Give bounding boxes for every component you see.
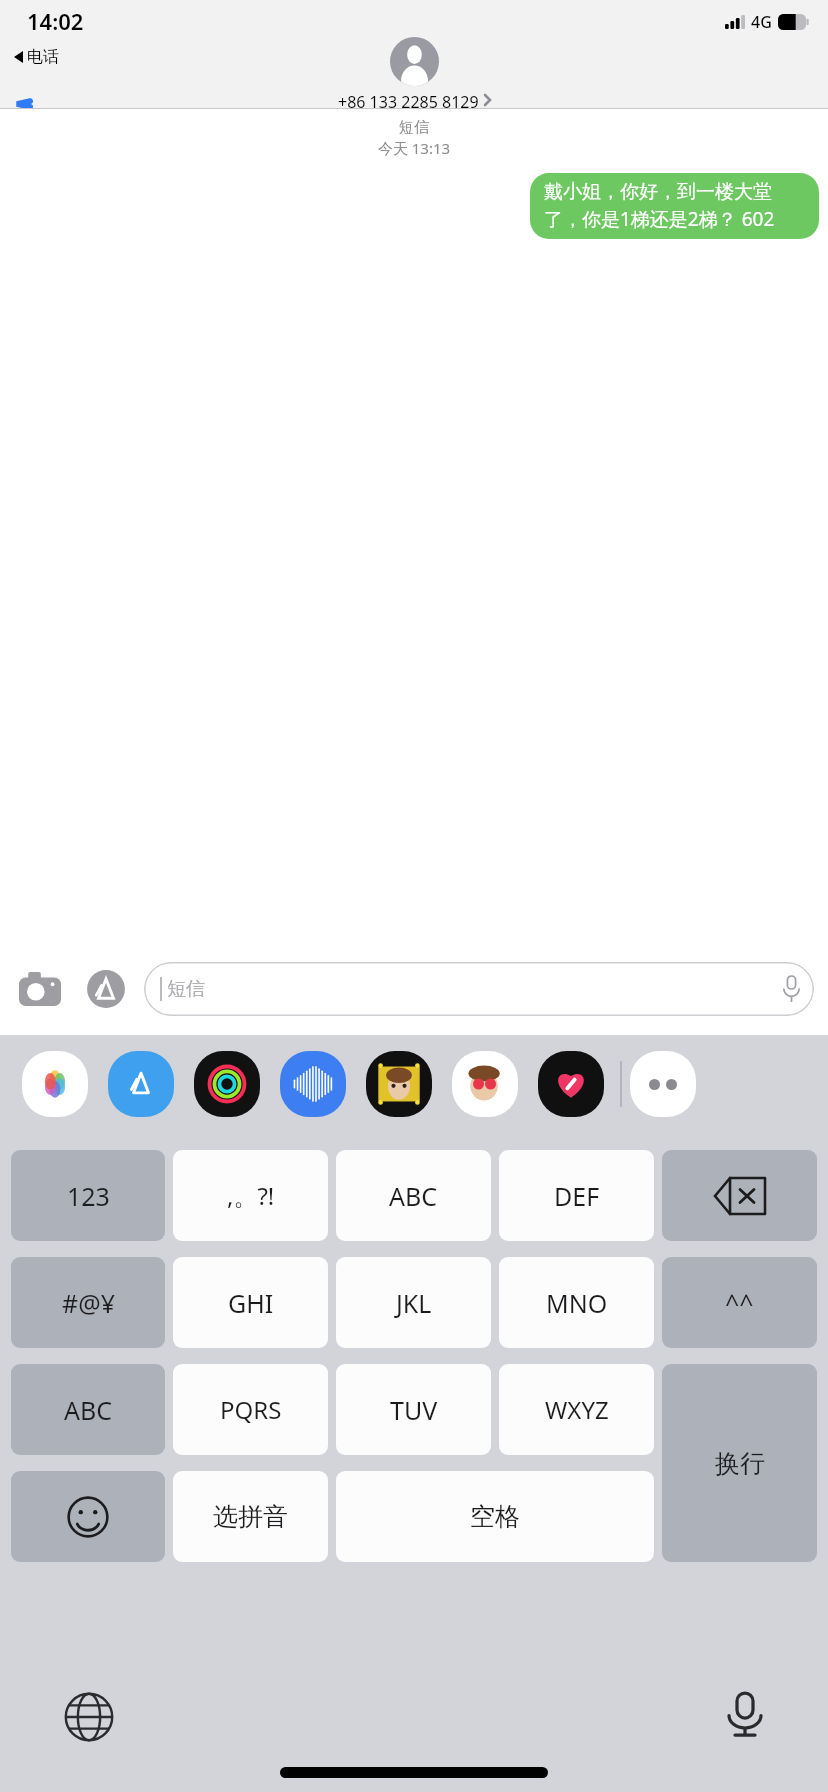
staticText: 空格 xyxy=(470,1501,520,1532)
button[interactable]: App 6 xyxy=(538,1051,604,1117)
staticText: GHI xyxy=(228,1286,274,1320)
button[interactable]: TUV xyxy=(336,1364,491,1455)
button[interactable]: App 0 xyxy=(22,1051,88,1117)
staticText: MNO xyxy=(546,1286,608,1320)
button[interactable]: App 4 xyxy=(366,1051,432,1117)
staticText: PQRS xyxy=(220,1393,282,1426)
staticText: DEF xyxy=(554,1179,600,1213)
button[interactable]: GHI xyxy=(173,1257,328,1348)
button[interactable]: 戴小姐，你好，到一楼大堂了，你是1梯还是2梯？ 602 xyxy=(530,173,819,239)
button[interactable]: #@¥ xyxy=(11,1257,165,1348)
button[interactable]: PQRS xyxy=(173,1364,328,1455)
staticText: 123 xyxy=(67,1179,110,1213)
button[interactable]: Dictation xyxy=(720,1688,770,1738)
staticText: #@¥ xyxy=(62,1286,115,1320)
staticText: 14:02 xyxy=(27,6,84,36)
staticText: +86 133 2285 8129 xyxy=(338,91,479,109)
button[interactable]: App 1 xyxy=(108,1051,174,1117)
button[interactable]: App Store xyxy=(80,963,132,1015)
staticText: TUV xyxy=(390,1393,438,1427)
staticText: 4G xyxy=(751,11,772,33)
button[interactable]: DEF xyxy=(499,1150,654,1241)
button[interactable]: ^^ xyxy=(662,1257,817,1348)
staticText: ^^ xyxy=(725,1286,754,1320)
button[interactable]: 123 xyxy=(11,1150,165,1241)
staticText: 短信 xyxy=(0,118,828,137)
staticText: ,。?! xyxy=(227,1179,275,1212)
staticText: 短信 xyxy=(167,977,205,1001)
button[interactable]: ABC xyxy=(336,1150,491,1241)
button[interactable]: App 5 xyxy=(452,1051,518,1117)
button[interactable]: WXYZ xyxy=(499,1364,654,1455)
staticText: 今天 13:13 xyxy=(0,138,828,158)
button[interactable]: App 3 xyxy=(280,1051,346,1117)
button[interactable]: +86 133 2285 8129 xyxy=(338,37,491,109)
staticText: 电话 xyxy=(27,47,59,67)
button[interactable]: Emoji xyxy=(11,1471,165,1562)
staticText: ABC xyxy=(64,1393,113,1427)
staticText: 选拼音 xyxy=(213,1501,288,1532)
staticText: WXYZ xyxy=(545,1393,609,1426)
button[interactable]: 换行 xyxy=(662,1364,817,1562)
button[interactable]: ,。?! xyxy=(173,1150,328,1241)
button[interactable]: ABC xyxy=(11,1364,165,1455)
button[interactable]: Back, 19 unread xyxy=(8,98,84,109)
button[interactable]: More xyxy=(630,1051,696,1117)
button[interactable]: JKL xyxy=(336,1257,491,1348)
staticText: 戴小姐，你好，到一楼大堂了，你是1梯还是2梯？ 602 xyxy=(544,180,805,232)
button[interactable]: 电话 xyxy=(10,44,63,70)
button[interactable]: 短信 xyxy=(144,962,814,1016)
button[interactable]: App 2 xyxy=(194,1051,260,1117)
button[interactable]: 空格 xyxy=(336,1471,654,1562)
button[interactable]: Delete xyxy=(662,1150,817,1241)
button[interactable]: Camera xyxy=(14,963,66,1015)
staticText: ABC xyxy=(389,1179,438,1213)
button[interactable]: Switch keyboard xyxy=(62,1690,116,1744)
button[interactable]: MNO xyxy=(499,1257,654,1348)
staticText: 换行 xyxy=(715,1448,765,1479)
button[interactable]: 选拼音 xyxy=(173,1471,328,1562)
staticText: JKL xyxy=(396,1286,432,1320)
